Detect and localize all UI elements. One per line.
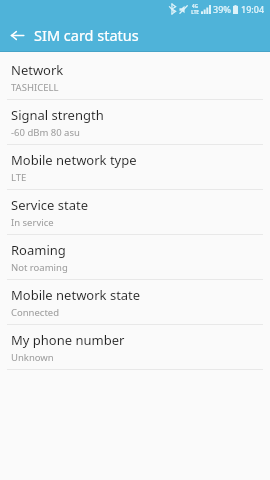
button[interactable]: Back [0,18,34,52]
button[interactable]: My phone number [0,325,270,369]
button[interactable]: Roaming [0,235,270,279]
staticText: Unknown [11,351,54,364]
staticText: In service [11,216,54,229]
staticText: Network [11,61,64,79]
staticText: 39% [213,3,231,15]
staticText: 4G [192,3,198,9]
staticText: -60 dBm 80 asu [11,126,80,139]
staticText: TASHICELL [11,81,59,94]
staticText: SIM card status [34,25,139,45]
staticText: My phone number [11,331,125,349]
button[interactable]: Mobile network type [0,145,270,189]
button[interactable]: Network [0,55,270,99]
button[interactable]: Service state [0,190,270,234]
staticText: Not roaming [11,261,68,274]
staticText: Signal strength [11,106,104,124]
staticText: Roaming [11,241,66,259]
staticText: LTE [11,171,27,184]
staticText: Mobile network type [11,151,137,169]
staticText: Connected [11,306,60,319]
staticText: 19:04 [241,3,265,15]
staticText: Service state [11,196,88,214]
button[interactable]: Mobile network state [0,280,270,324]
staticText: Mobile network state [11,286,141,304]
button[interactable]: Signal strength [0,100,270,144]
staticText: LTE [191,9,199,15]
